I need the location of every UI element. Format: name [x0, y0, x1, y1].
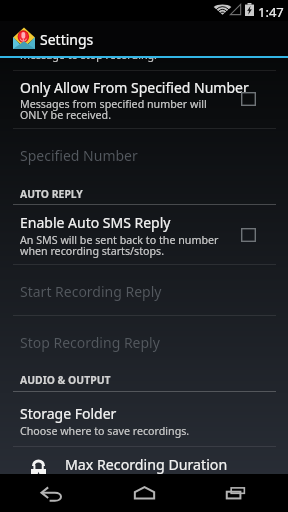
- button[interactable]: [0, 129, 288, 181]
- staticText: Choose where to save recordings.: [20, 424, 190, 439]
- button[interactable]: [0, 265, 288, 315]
- button[interactable]: Home: [104, 474, 184, 512]
- button[interactable]: [0, 206, 288, 264]
- staticText: An SMS will be sent back to the number: [20, 233, 219, 248]
- staticText: Messages from specified number will: [20, 97, 207, 112]
- button[interactable]: [0, 392, 288, 446]
- button[interactable]: [0, 316, 288, 366]
- staticText: Specified Number: [20, 146, 138, 165]
- staticText: AUDIO & OUTPUT: [20, 373, 111, 387]
- staticText: Settings: [40, 30, 94, 49]
- staticText: Max Recording Duration: [65, 455, 228, 474]
- button[interactable]: Back: [12, 474, 92, 512]
- staticText: Storage Folder: [20, 404, 117, 423]
- staticText: when recording starts/stops.: [20, 244, 165, 259]
- staticText: message to stop recording.: [20, 48, 157, 63]
- staticText: Start Recording Reply: [20, 282, 162, 301]
- button[interactable]: [0, 71, 288, 128]
- staticText: Stop Recording Reply: [20, 333, 160, 352]
- button[interactable]: Recent apps: [196, 474, 276, 512]
- staticText: Enable Auto SMS Reply: [20, 213, 171, 232]
- button[interactable]: Settings: [0, 21, 288, 58]
- staticText: Only Allow From Specified Number: [20, 78, 249, 97]
- button[interactable]: Toggle setting: [236, 223, 260, 247]
- staticText: ONLY be received.: [20, 108, 111, 123]
- staticText: 1:47: [258, 3, 284, 21]
- button[interactable]: Toggle setting: [236, 87, 260, 111]
- staticText: AUTO REPLY: [20, 187, 83, 201]
- button[interactable]: [0, 447, 288, 482]
